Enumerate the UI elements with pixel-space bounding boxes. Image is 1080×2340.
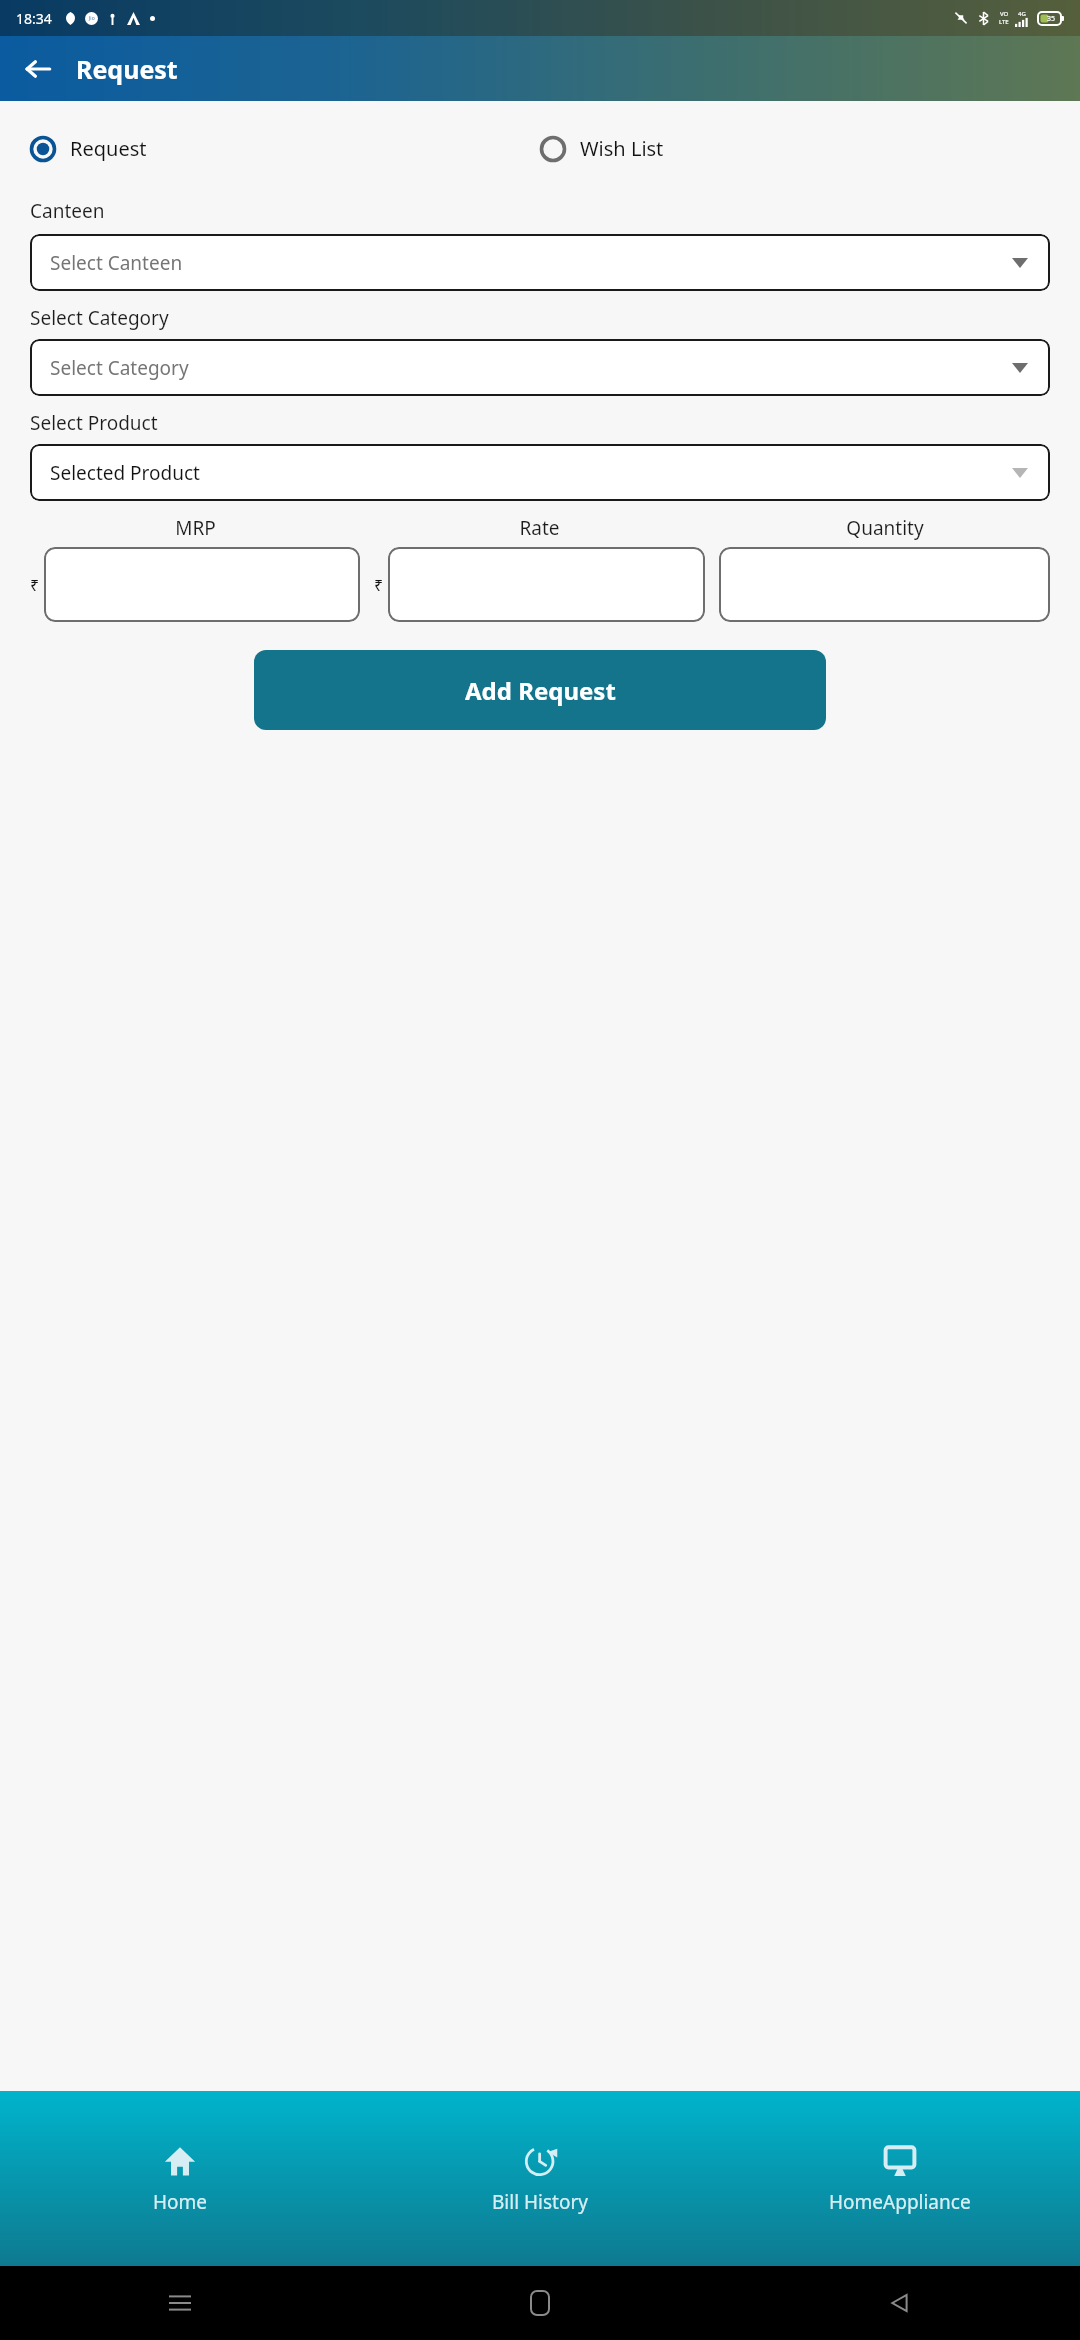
staticText: Select Canteen — [50, 250, 183, 276]
staticText: MRP — [175, 515, 216, 541]
staticText: Canteen — [30, 198, 105, 224]
staticText: Wish List — [580, 135, 664, 162]
button[interactable]: Bill History — [360, 2133, 720, 2225]
button[interactable]: Add Request — [254, 650, 826, 730]
staticText: ₹ — [30, 574, 40, 596]
staticText: Rate — [519, 515, 560, 541]
staticText: Select Category — [50, 355, 189, 381]
staticText: ₹ — [374, 574, 384, 596]
button[interactable]: Selected Product — [30, 444, 1050, 501]
button[interactable] — [388, 547, 705, 622]
staticText: VO — [1000, 10, 1009, 18]
button[interactable]: Select Canteen — [30, 234, 1050, 291]
button[interactable]: Recent apps — [0, 2266, 360, 2340]
staticText: HomeAppliance — [829, 2189, 971, 2215]
staticText: Home — [153, 2189, 208, 2215]
staticText: Request — [76, 52, 178, 86]
staticText: Bill History — [492, 2189, 588, 2215]
staticText: Select Product — [30, 410, 158, 436]
staticText: LTE — [999, 18, 1009, 26]
staticText: 18:34 — [16, 9, 52, 28]
button[interactable]: Back — [14, 45, 62, 93]
staticText: Add Request — [465, 674, 616, 707]
button[interactable]: HomeAppliance — [720, 2133, 1080, 2225]
button[interactable] — [719, 547, 1050, 622]
staticText: 35 — [1047, 14, 1056, 24]
button[interactable]: Select Category — [30, 339, 1050, 396]
staticText: Request — [70, 135, 147, 162]
button[interactable]: Home — [360, 2266, 720, 2340]
button[interactable]: Wish List — [540, 129, 1050, 168]
staticText: Select Category — [30, 305, 169, 331]
staticText: Jio — [89, 15, 95, 22]
staticText: 4G — [1018, 10, 1026, 18]
staticText: Quantity — [846, 515, 924, 541]
button[interactable] — [44, 547, 360, 622]
staticText: Selected Product — [50, 460, 200, 486]
button[interactable]: Request — [30, 129, 540, 168]
button[interactable]: Back — [720, 2266, 1080, 2340]
button[interactable]: Home — [0, 2133, 360, 2225]
